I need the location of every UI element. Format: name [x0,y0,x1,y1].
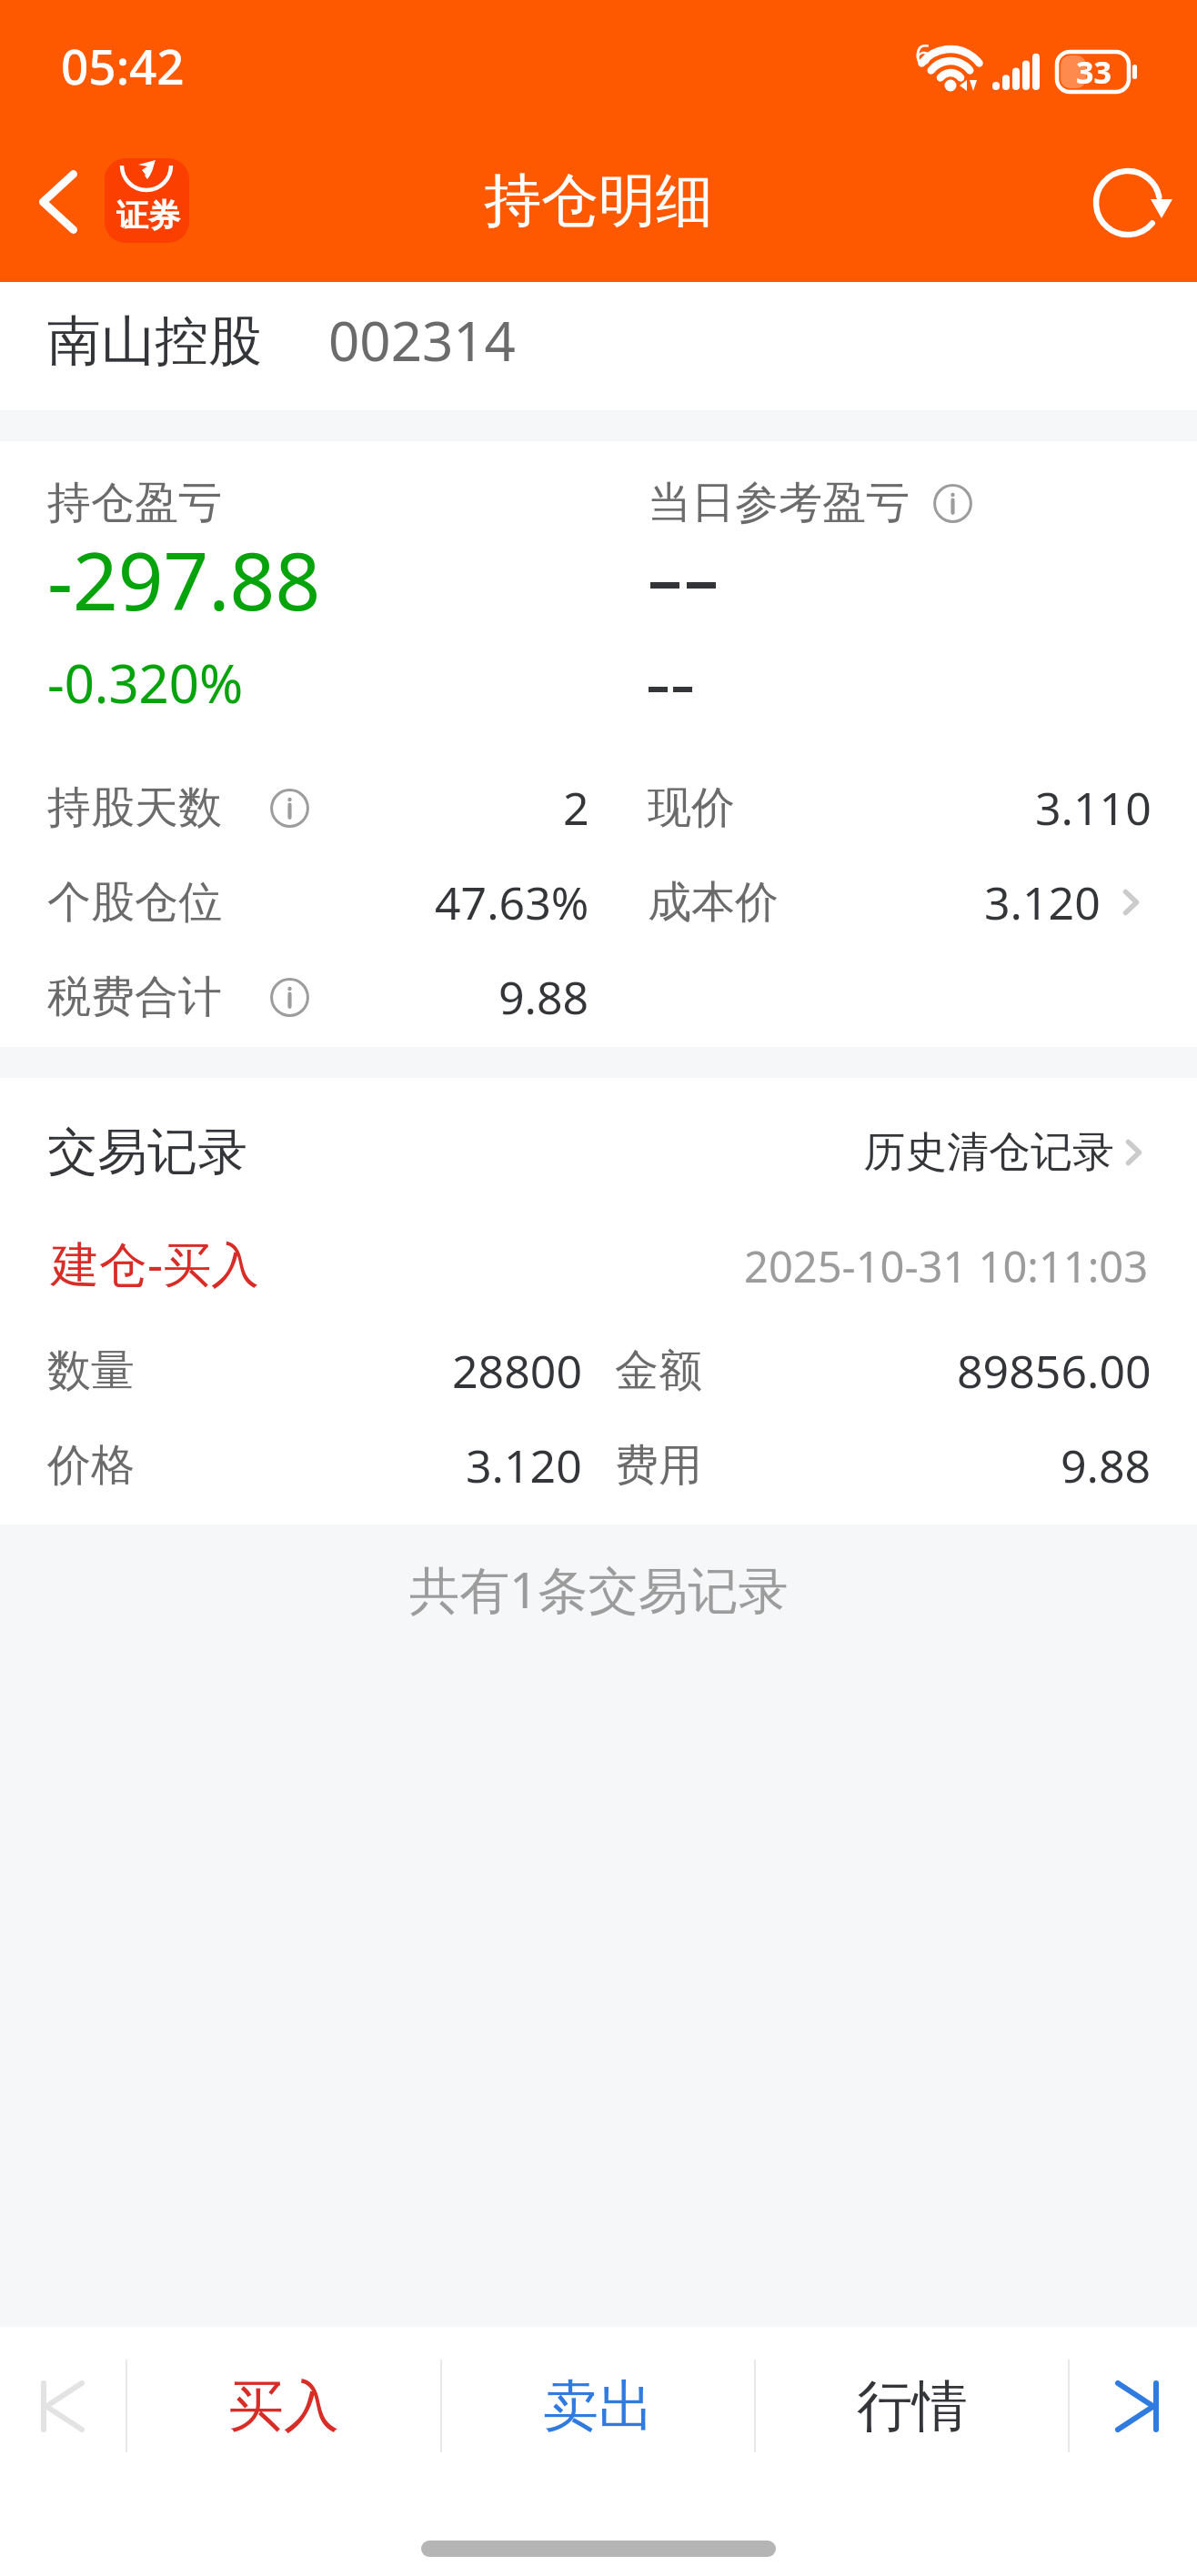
staticText: 个股仓位 [47,875,222,930]
staticText: 002314 [328,303,516,377]
staticText: 金额 [615,1343,702,1398]
staticText: 2 [563,777,589,839]
staticText: 证券 [116,196,180,236]
button[interactable]: Back [7,138,109,266]
staticText: 05:42 [61,33,185,98]
staticText: 28800 [452,1340,582,1402]
staticText: 价格 [47,1438,135,1493]
staticText: 费用 [615,1438,702,1493]
staticText: 当日参考盈亏 [648,476,910,530]
staticText: 共有1条交易记录 [409,1555,789,1623]
staticText: -0.320% [47,647,244,719]
staticText: 行情 [857,2371,968,2441]
staticText: 卖出 [543,2371,654,2441]
staticText: 税费合计 [47,970,222,1024]
staticText: 9.88 [498,966,589,1028]
staticText: 3.110 [1035,777,1152,839]
staticText: 历史清仓记录 [863,1126,1114,1179]
staticText: 9.88 [1061,1434,1152,1496]
staticText: 持仓盈亏 [47,476,222,530]
staticText: 建仓-买入 [51,1230,260,1295]
staticText: 买入 [228,2371,339,2441]
staticText: 47.63% [435,871,589,933]
staticText: -297.88 [47,526,321,633]
staticText: 现价 [648,780,735,835]
staticText: 89856.00 [957,1340,1152,1402]
staticText: 持股天数 [47,780,222,835]
staticText: 数量 [47,1343,135,1398]
button[interactable]: Last stock [1070,2327,1197,2485]
staticText: 南山控股 [47,307,262,375]
staticText: 33 [1076,51,1111,93]
staticText: 成本价 [648,875,779,930]
staticText: 3.120 [466,1434,582,1496]
staticText: 交易记录 [47,1121,247,1183]
button[interactable]: 行情 [756,2327,1068,2485]
staticText: 6 [915,35,931,73]
button[interactable]: 卖出 [442,2327,754,2485]
button[interactable]: 历史清仓记录 [863,1126,1142,1179]
staticText: 3.120 [984,871,1101,933]
button[interactable]: Broker [105,158,189,243]
staticText: 2025-10-31 10:11:03 [744,1237,1149,1295]
button[interactable]: Refresh [1077,152,1179,254]
staticText: 持仓明细 [484,165,713,236]
button[interactable]: First stock [0,2327,126,2485]
button[interactable]: 买入 [127,2327,440,2485]
